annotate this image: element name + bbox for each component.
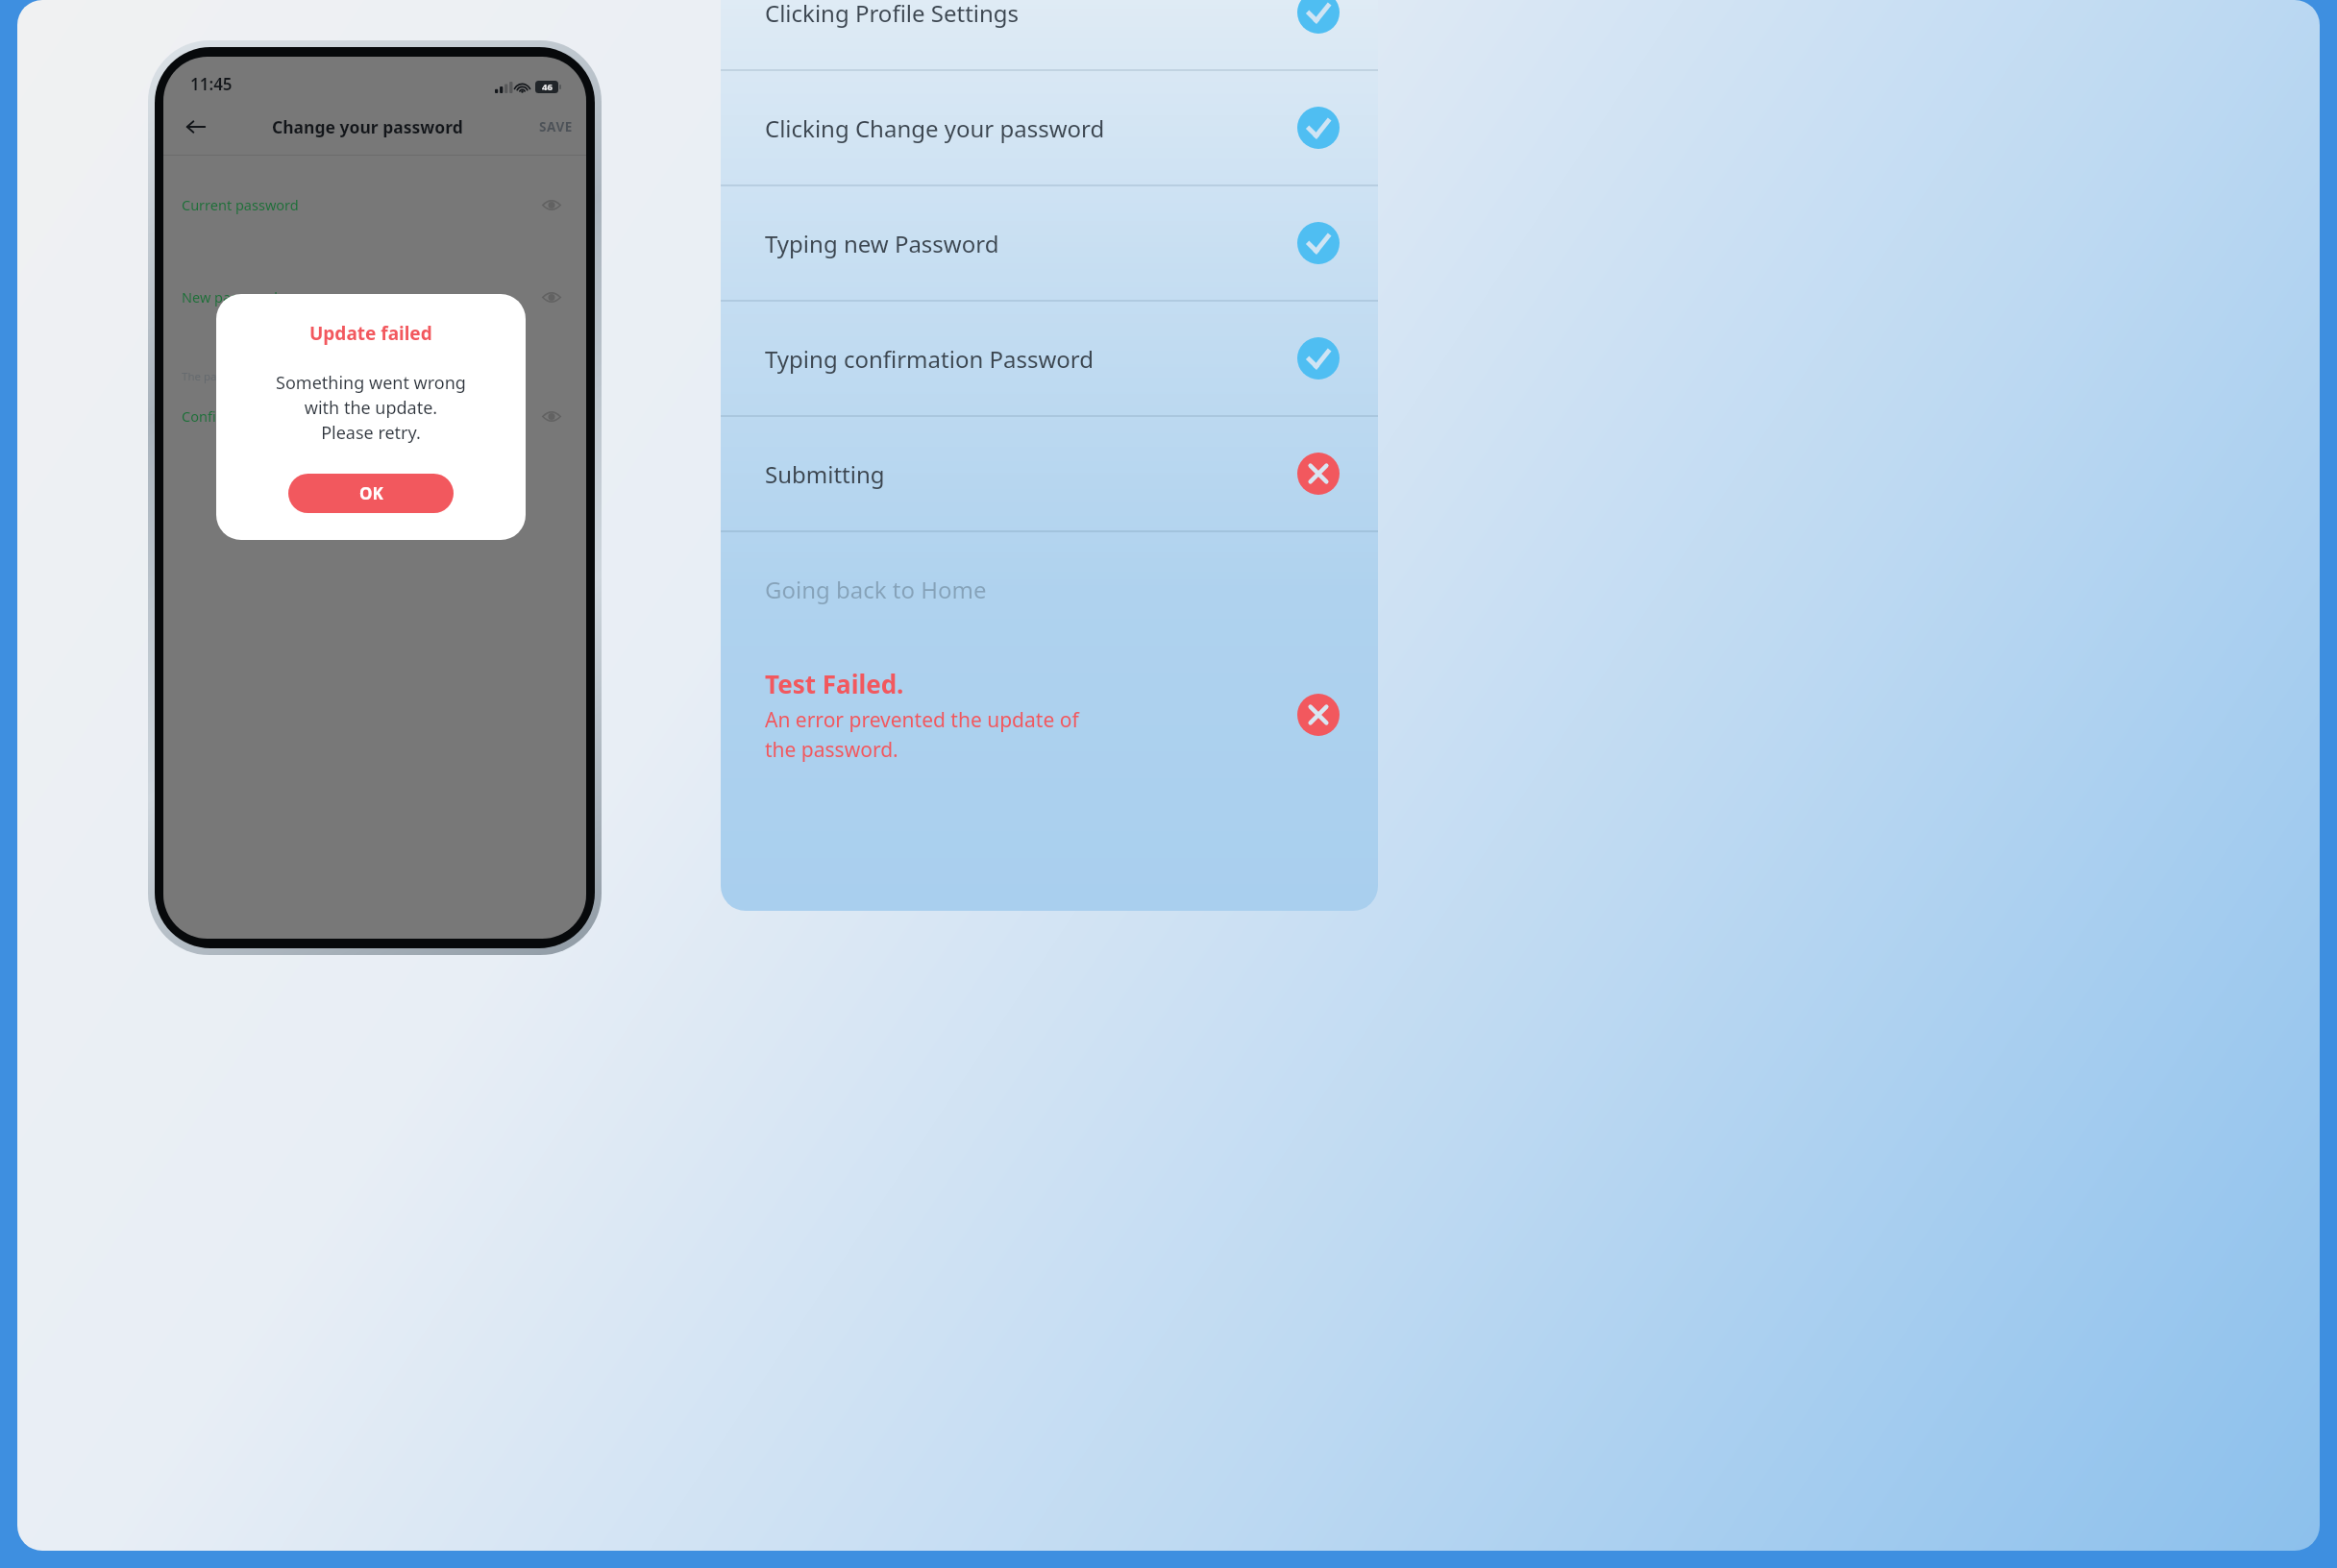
staticText: The password must be at least 8 characte… (182, 369, 409, 384)
staticText: Test Failed. (765, 667, 904, 700)
staticText: Clicking Profile Settings (765, 0, 1297, 29)
button[interactable]: Submitting (721, 417, 1378, 530)
other: Passed (1297, 222, 1340, 264)
button[interactable]: Clicking Change your password (721, 71, 1378, 184)
staticText: Something went wrong with the update. Pl… (276, 371, 466, 445)
staticText: Confirm new password (182, 406, 332, 426)
staticText: Typing confirmation Password (765, 343, 1297, 375)
staticText: New password (182, 287, 278, 306)
staticText: SAVE (539, 118, 573, 135)
other: Passed (1297, 337, 1340, 380)
staticText: 46 (542, 81, 553, 93)
button[interactable]: Typing confirmation Password (721, 302, 1378, 415)
other: Failed (1297, 694, 1340, 736)
other: Passed (1297, 107, 1340, 149)
staticText: OK (359, 482, 383, 504)
button[interactable]: Clicking Profile Settings (721, 0, 1378, 69)
button[interactable]: Show password (535, 400, 568, 432)
staticText: Going back to Home (765, 574, 1297, 605)
button[interactable]: Back (175, 106, 217, 148)
button[interactable]: OK (288, 474, 454, 513)
button[interactable]: Going back to Home (721, 532, 1378, 646)
staticText: Change your password (272, 115, 463, 138)
staticText: Update failed (309, 321, 432, 346)
button[interactable]: SAVE (526, 110, 586, 143)
staticText: Typing new Password (765, 228, 1297, 259)
staticText: An error prevented the update of the pas… (765, 706, 1082, 763)
staticText: 11:45 (190, 73, 233, 95)
staticText: Submitting (765, 458, 1297, 490)
staticText: Clicking Change your password (765, 112, 1297, 144)
button[interactable]: Typing new Password (721, 186, 1378, 300)
button[interactable]: Show password (535, 281, 568, 313)
other: Failed (1297, 453, 1340, 495)
staticText: Current password (182, 195, 299, 214)
other: Passed (1297, 0, 1340, 34)
button[interactable]: Show password (535, 188, 568, 221)
